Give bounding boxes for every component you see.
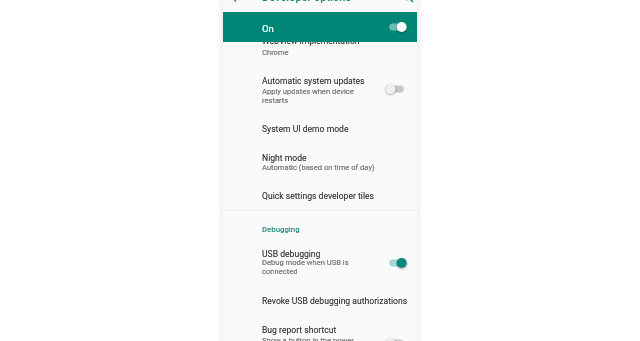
staticText: WebView implementation [262,36,360,46]
button[interactable]: Turn on [385,336,407,341]
button[interactable] [223,320,417,341]
staticText: Developer options [262,0,352,4]
staticText: Night mode [262,153,307,163]
staticText: On [262,23,274,34]
staticText: System UI demo mode [262,124,349,134]
button[interactable] [223,290,417,316]
staticText: WebView implementation [262,36,360,46]
staticText: Automatic (based on time of day) [262,163,382,172]
button[interactable]: Search [397,0,419,8]
button[interactable] [223,68,417,110]
staticText: Show a button in the power menu [262,336,358,341]
staticText: USB debugging [262,249,321,259]
button[interactable] [223,146,417,178]
staticText: Quick settings developer tiles [262,191,374,201]
staticText: Chrome [262,48,362,57]
staticText: Revoke USB debugging authorizations [262,296,408,306]
button[interactable] [223,12,417,42]
staticText: Bug report shortcut [262,325,337,335]
staticText: Automatic system updates [262,76,365,86]
staticText: Bug report shortcut [262,325,337,335]
staticText: Debug mode when USB is connected [262,258,350,276]
button[interactable] [223,118,417,144]
staticText: Debugging [262,225,300,234]
staticText: Show a button in the power menu [262,336,358,341]
button[interactable]: Turn off [385,20,407,34]
staticText: Apply updates when device restarts [262,87,358,105]
staticText: Chrome [262,48,362,57]
staticText: Automatic system updates [262,76,365,86]
staticText: USB debugging [262,249,321,259]
button[interactable]: Turn on [385,82,407,96]
button[interactable]: Turn off [385,256,407,270]
staticText: Automatic (based on time of day) [262,163,382,172]
staticText: Apply updates when device restarts [262,87,358,105]
staticText: System UI demo mode [262,124,349,134]
staticText: Revoke USB debugging authorizations [262,296,408,306]
button[interactable]: Navigate up [226,0,248,8]
button[interactable] [223,36,417,62]
staticText: Quick settings developer tiles [262,191,374,201]
button[interactable] [223,243,417,282]
button[interactable] [223,186,417,209]
staticText: Night mode [262,153,307,163]
staticText: Debug mode when USB is connected [262,258,350,276]
